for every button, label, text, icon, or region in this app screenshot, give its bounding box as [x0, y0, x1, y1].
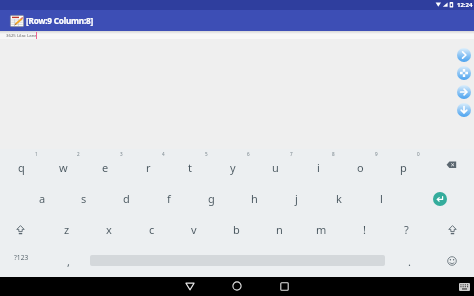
- button[interactable]: v: [175, 215, 213, 243]
- staticText: s: [81, 191, 87, 206]
- staticText: !: [363, 222, 366, 237]
- button[interactable]: [440, 156, 464, 178]
- button[interactable]: ?123: [4, 245, 38, 269]
- button[interactable]: l: [361, 184, 401, 212]
- button[interactable]: [457, 66, 471, 80]
- button[interactable]: o: [340, 153, 380, 181]
- button[interactable]: ,: [53, 249, 83, 273]
- staticText: d: [123, 191, 130, 206]
- button[interactable]: q: [1, 153, 41, 181]
- button[interactable]: h: [234, 184, 274, 212]
- button[interactable]: x: [90, 215, 128, 243]
- button[interactable]: c: [133, 215, 171, 243]
- button[interactable]: f: [149, 184, 189, 212]
- staticText: m: [316, 222, 327, 237]
- button[interactable]: !: [345, 215, 383, 243]
- button[interactable]: ?: [387, 215, 425, 243]
- staticText: 3625 Lilac Lane: [6, 32, 37, 38]
- staticText: z: [64, 222, 70, 237]
- staticText: v: [191, 222, 197, 237]
- button[interactable]: m: [302, 215, 340, 243]
- staticText: 6: [247, 151, 250, 157]
- staticText: n: [276, 222, 283, 237]
- button[interactable]: s: [64, 184, 104, 212]
- button[interactable]: [272, 277, 296, 296]
- button[interactable]: b: [217, 215, 255, 243]
- button[interactable]: [10, 15, 24, 27]
- staticText: f: [167, 191, 171, 206]
- button[interactable]: [457, 85, 471, 99]
- staticText: 12:24: [457, 1, 473, 9]
- staticText: p: [400, 160, 407, 175]
- button[interactable]: [225, 277, 249, 296]
- button[interactable]: d: [106, 184, 146, 212]
- button[interactable]: 3625 Lilac Lane: [6, 31, 66, 39]
- staticText: e: [102, 160, 109, 175]
- staticText: t: [188, 160, 192, 175]
- staticText: ?123: [14, 253, 29, 262]
- staticText: k: [336, 191, 342, 206]
- button[interactable]: [441, 250, 463, 272]
- staticText: [Row:9 Column:8]: [26, 15, 94, 26]
- button[interactable]: k: [319, 184, 359, 212]
- staticText: c: [149, 222, 155, 237]
- staticText: l: [380, 191, 383, 206]
- button[interactable]: e: [85, 153, 125, 181]
- staticText: ?: [404, 222, 409, 237]
- staticText: r: [146, 160, 151, 175]
- button[interactable]: n: [260, 215, 298, 243]
- button[interactable]: z: [48, 215, 86, 243]
- staticText: j: [295, 191, 298, 206]
- button[interactable]: r: [128, 153, 168, 181]
- button[interactable]: [457, 48, 471, 62]
- staticText: q: [18, 160, 25, 175]
- button[interactable]: [178, 277, 202, 296]
- button[interactable]: j: [276, 184, 316, 212]
- staticText: a: [39, 191, 46, 206]
- button[interactable]: i: [298, 153, 338, 181]
- staticText: 9: [375, 151, 378, 157]
- staticText: .: [408, 254, 411, 269]
- staticText: i: [317, 160, 320, 175]
- button[interactable]: a: [22, 184, 62, 212]
- staticText: o: [357, 160, 364, 175]
- staticText: 3: [120, 151, 123, 157]
- staticText: b: [233, 222, 240, 237]
- staticText: h: [251, 191, 258, 206]
- staticText: w: [59, 160, 68, 175]
- staticText: 4: [162, 151, 165, 157]
- staticText: 0: [417, 151, 420, 157]
- button[interactable]: [8, 218, 34, 242]
- staticText: 5: [205, 151, 208, 157]
- button[interactable]: g: [191, 184, 231, 212]
- button[interactable]: u: [255, 153, 295, 181]
- staticText: g: [208, 191, 215, 206]
- button[interactable]: [440, 218, 466, 242]
- button[interactable]: [457, 103, 471, 117]
- staticText: 8: [332, 151, 335, 157]
- button[interactable]: .: [394, 249, 424, 273]
- button[interactable]: [433, 192, 447, 206]
- staticText: y: [230, 160, 236, 175]
- button[interactable]: t: [170, 153, 210, 181]
- staticText: 2: [77, 151, 80, 157]
- staticText: 7: [290, 151, 293, 157]
- staticText: x: [106, 222, 112, 237]
- staticText: 1: [35, 151, 38, 157]
- button[interactable]: y: [213, 153, 253, 181]
- staticText: ,: [67, 254, 70, 269]
- button[interactable]: p: [383, 153, 423, 181]
- button[interactable]: [455, 280, 474, 294]
- staticText: u: [272, 160, 279, 175]
- button[interactable]: w: [43, 153, 83, 181]
